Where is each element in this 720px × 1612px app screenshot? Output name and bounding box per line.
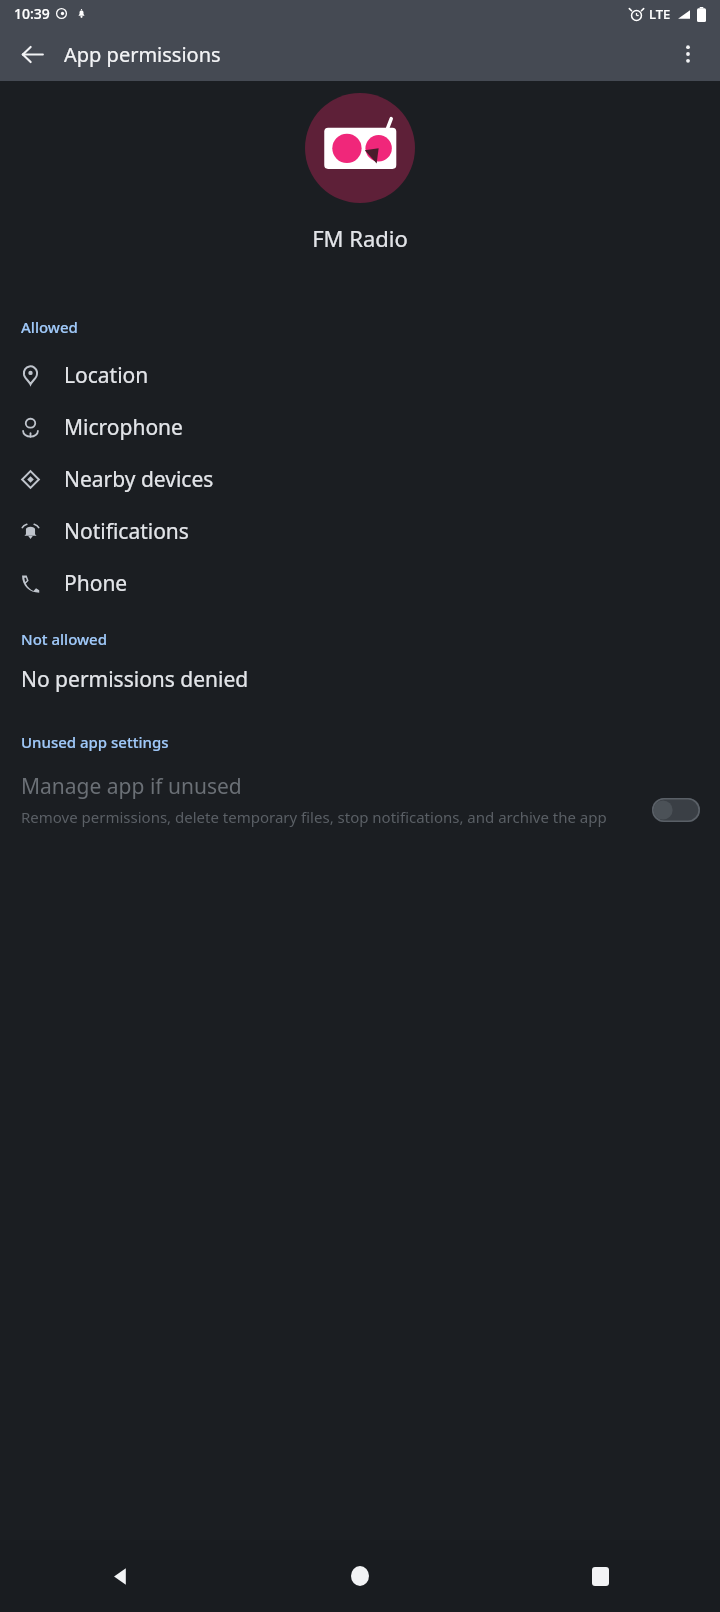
staticText: FM Radio	[312, 223, 408, 253]
button[interactable]: Phone	[0, 557, 720, 609]
staticText: 10:39	[14, 4, 50, 23]
button[interactable]: Manage app if unused	[21, 772, 700, 827]
button[interactable]: Recent apps	[480, 1540, 720, 1612]
staticText: Allowed	[21, 317, 78, 337]
staticText: Location	[64, 361, 149, 390]
button[interactable]: Microphone	[0, 401, 720, 453]
button[interactable]: Location	[0, 349, 720, 401]
staticText: Unused app settings	[21, 732, 169, 752]
button[interactable]: Notifications	[0, 505, 720, 557]
staticText: No permissions denied	[21, 665, 249, 694]
button[interactable]: More options	[664, 30, 712, 78]
button[interactable]: Home	[240, 1540, 480, 1612]
staticText: Nearby devices	[64, 465, 214, 494]
staticText: Not allowed	[21, 629, 108, 649]
staticText: LTE	[649, 5, 671, 23]
staticText: Manage app if unused	[21, 772, 242, 801]
staticText: Notifications	[64, 517, 189, 546]
button[interactable]: Nearby devices	[0, 453, 720, 505]
button[interactable]: Back	[0, 1540, 240, 1612]
button[interactable]: Back	[8, 30, 56, 78]
staticText: Microphone	[64, 413, 183, 442]
staticText: App permissions	[64, 41, 221, 68]
staticText: Phone	[64, 569, 128, 598]
staticText: Remove permissions, delete temporary fil…	[21, 807, 607, 827]
button[interactable]: Manage app if unused toggle	[652, 798, 700, 822]
